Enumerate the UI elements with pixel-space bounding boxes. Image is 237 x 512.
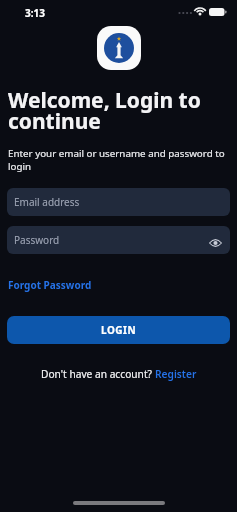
staticText: 3:13 <box>25 6 45 20</box>
button[interactable]: Password <box>7 226 230 254</box>
button[interactable]: Don't have an account? <box>41 367 197 381</box>
button[interactable]: Forgot Password <box>8 278 92 292</box>
staticText: Email address <box>14 195 80 209</box>
button[interactable]: LOGIN <box>7 316 230 344</box>
staticText: Register <box>155 367 197 381</box>
staticText: Password <box>14 233 60 247</box>
staticText: Don't have an account? <box>41 367 155 381</box>
staticText: Enter your email or username and passwor… <box>8 147 225 173</box>
staticText: LOGIN <box>101 323 137 337</box>
staticText: Welcome, Login to continue <box>8 86 201 136</box>
button[interactable]: Email address <box>7 188 230 216</box>
